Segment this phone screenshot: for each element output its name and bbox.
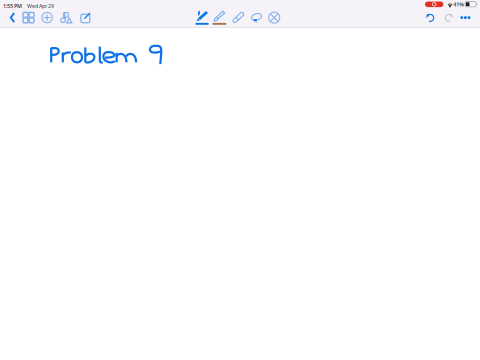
button[interactable]: Eraser	[229, 8, 248, 28]
staticText: 1:55 PM	[3, 2, 22, 10]
button[interactable]: Back	[3, 8, 22, 28]
staticText: Wed Apr 29	[27, 2, 54, 10]
button[interactable]: Highlighter	[210, 8, 229, 28]
staticText: 41%	[453, 1, 464, 8]
button[interactable]: New note	[76, 8, 95, 28]
button[interactable]: Insert	[38, 8, 57, 28]
button[interactable]: Redo	[439, 8, 458, 28]
button[interactable]: Pen	[192, 8, 211, 28]
button[interactable]: Hide tools	[265, 8, 284, 28]
button[interactable]: Lasso	[247, 8, 266, 28]
button[interactable]: Shapes	[57, 8, 76, 28]
button[interactable]: Undo	[420, 8, 439, 28]
button[interactable]: More	[456, 8, 475, 28]
button[interactable]: Note library	[19, 8, 38, 28]
